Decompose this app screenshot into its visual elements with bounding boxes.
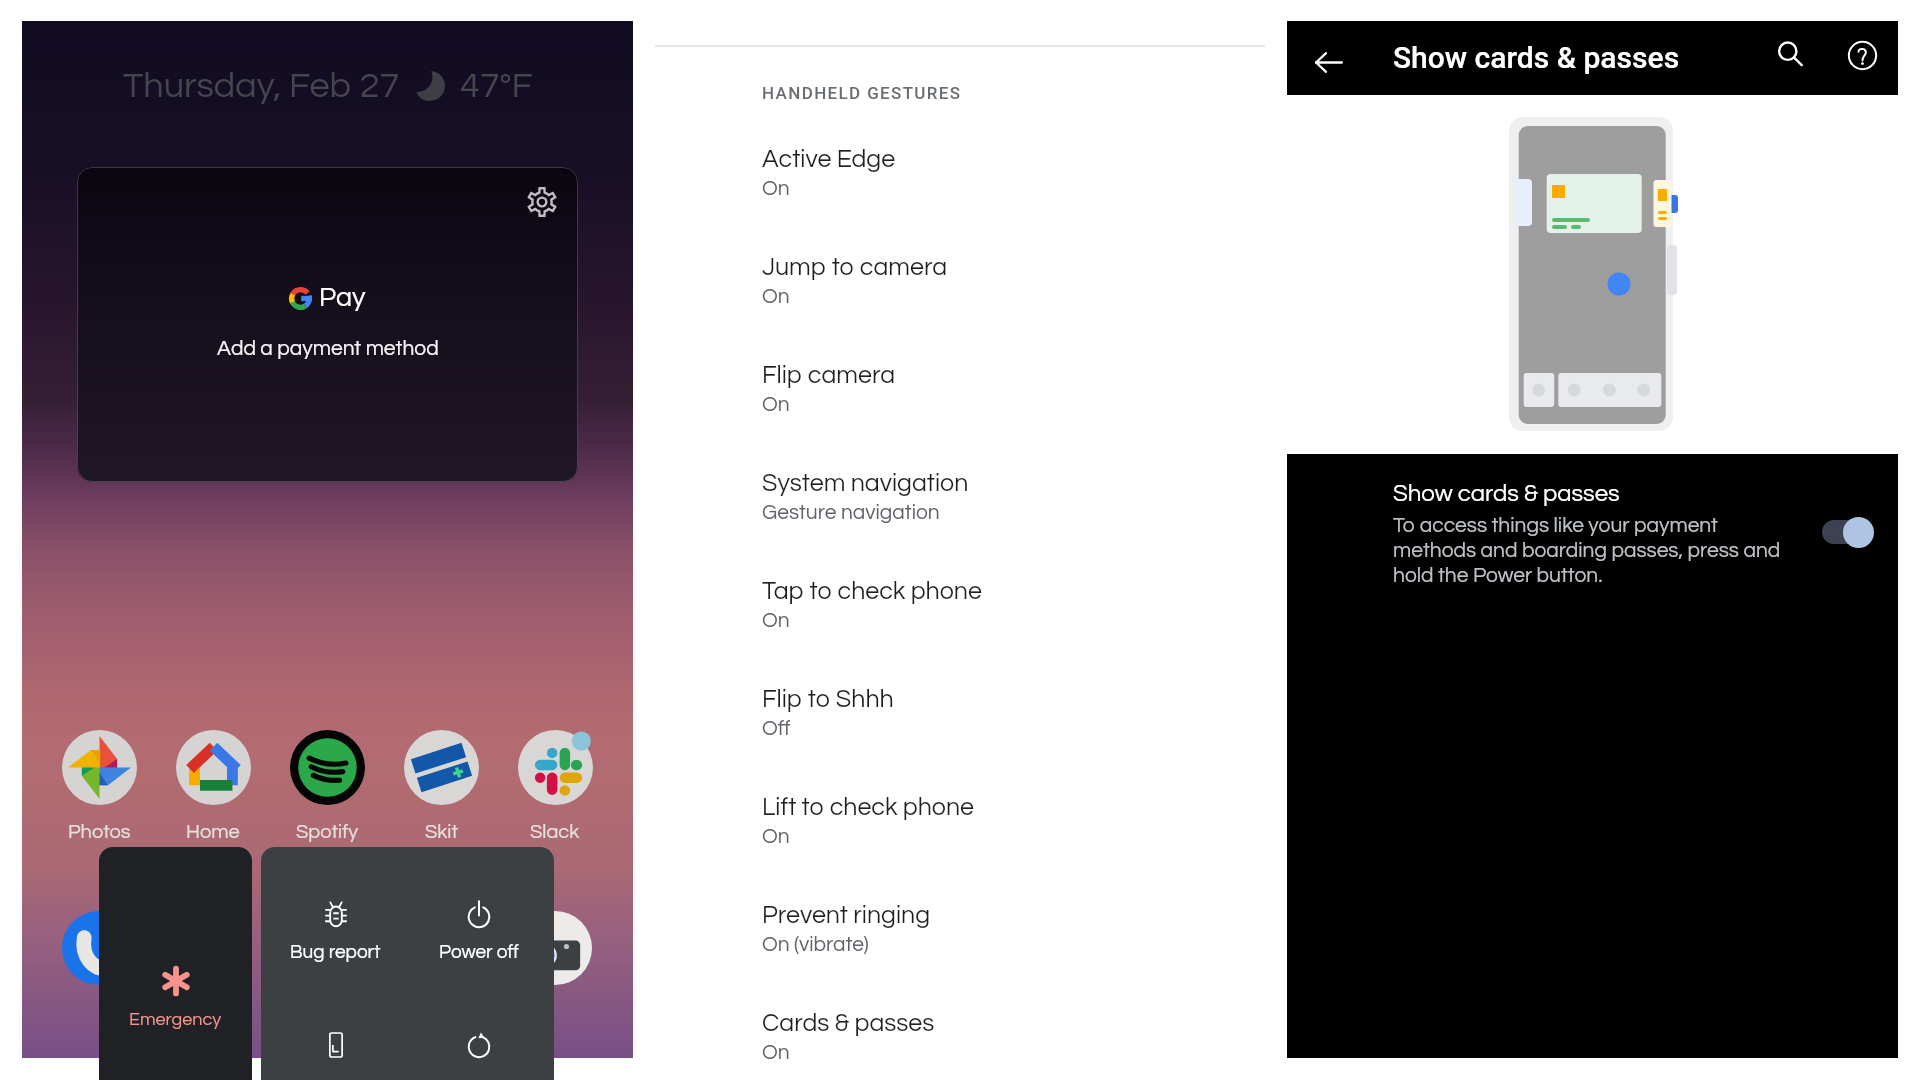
staticText: Active Edge [762, 146, 896, 172]
button[interactable]: Back [1305, 39, 1351, 85]
staticText: Show cards & passes [1393, 481, 1620, 506]
button[interactable]: Skit [384, 730, 498, 843]
staticText: Add a payment method [217, 338, 439, 360]
button[interactable]: Power off [408, 900, 549, 962]
button[interactable]: Cards & passes [762, 1010, 1262, 1080]
staticText: On [762, 394, 790, 416]
staticText: System navigation [762, 470, 969, 496]
button[interactable]: Bug report [265, 900, 406, 962]
staticText: Gesture navigation [762, 502, 940, 524]
staticText: On [762, 178, 790, 200]
button[interactable]: Spotify [270, 730, 384, 843]
staticText: Thursday, Feb 27 [123, 67, 400, 104]
button[interactable]: System navigation [762, 470, 1262, 578]
button[interactable] [518, 911, 592, 985]
staticText: Pay [319, 284, 366, 312]
button[interactable]: Show cards & passes [1287, 454, 1898, 559]
staticText: Emergency [129, 1010, 222, 1029]
staticText: On [762, 286, 790, 308]
button[interactable]: Help [1839, 32, 1885, 78]
button[interactable]: Active Edge [762, 146, 1262, 254]
staticText: Show cards & passes [1393, 40, 1680, 75]
staticText: Lift to check phone [762, 794, 975, 820]
button[interactable]: Flip to Shhh [762, 686, 1262, 794]
button[interactable] [290, 911, 364, 985]
button[interactable]: Prevent ringing [762, 902, 1262, 1010]
staticText: On (vibrate) [762, 934, 869, 956]
button[interactable]: Home [156, 730, 270, 843]
button[interactable]: Settings [518, 178, 566, 226]
staticText: Spotify [296, 822, 359, 843]
staticText: HANDHELD GESTURES [762, 83, 962, 103]
button[interactable]: Lift to check phone [762, 794, 1262, 902]
staticText: Power off [439, 942, 519, 962]
staticText: Flip camera [762, 362, 896, 388]
button[interactable]: Slack [498, 730, 612, 843]
button[interactable] [176, 911, 250, 985]
staticText: Skit [425, 822, 458, 843]
button[interactable]: Flip camera [762, 362, 1262, 470]
staticText: On [762, 610, 790, 632]
staticText: To access things like your payment metho… [1393, 515, 1788, 586]
staticText: Prevent ringing [762, 902, 931, 928]
staticText: On [762, 826, 790, 848]
staticText: Off [762, 718, 791, 740]
button[interactable]: Settings [77, 167, 578, 482]
staticText: Flip to Shhh [762, 686, 894, 712]
staticText: Bug report [290, 942, 381, 962]
button[interactable]: Search [1767, 31, 1813, 77]
staticText: Jump to camera [762, 254, 948, 280]
staticText: Photos [68, 822, 131, 843]
button[interactable]: Tap to check phone [762, 578, 1262, 686]
button[interactable] [408, 1030, 549, 1060]
button[interactable] [404, 911, 478, 985]
button[interactable]: Emergency [99, 847, 252, 1080]
button[interactable] [265, 1030, 406, 1060]
staticText: 47°F [460, 67, 533, 104]
button[interactable]: Photos [42, 730, 156, 843]
staticText: Tap to check phone [762, 578, 982, 604]
staticText: Home [186, 822, 240, 843]
staticText: On [762, 1042, 790, 1064]
button[interactable]: Jump to camera [762, 254, 1262, 362]
staticText: Slack [530, 822, 580, 843]
button[interactable] [62, 911, 136, 985]
staticText: Cards & passes [762, 1010, 935, 1036]
